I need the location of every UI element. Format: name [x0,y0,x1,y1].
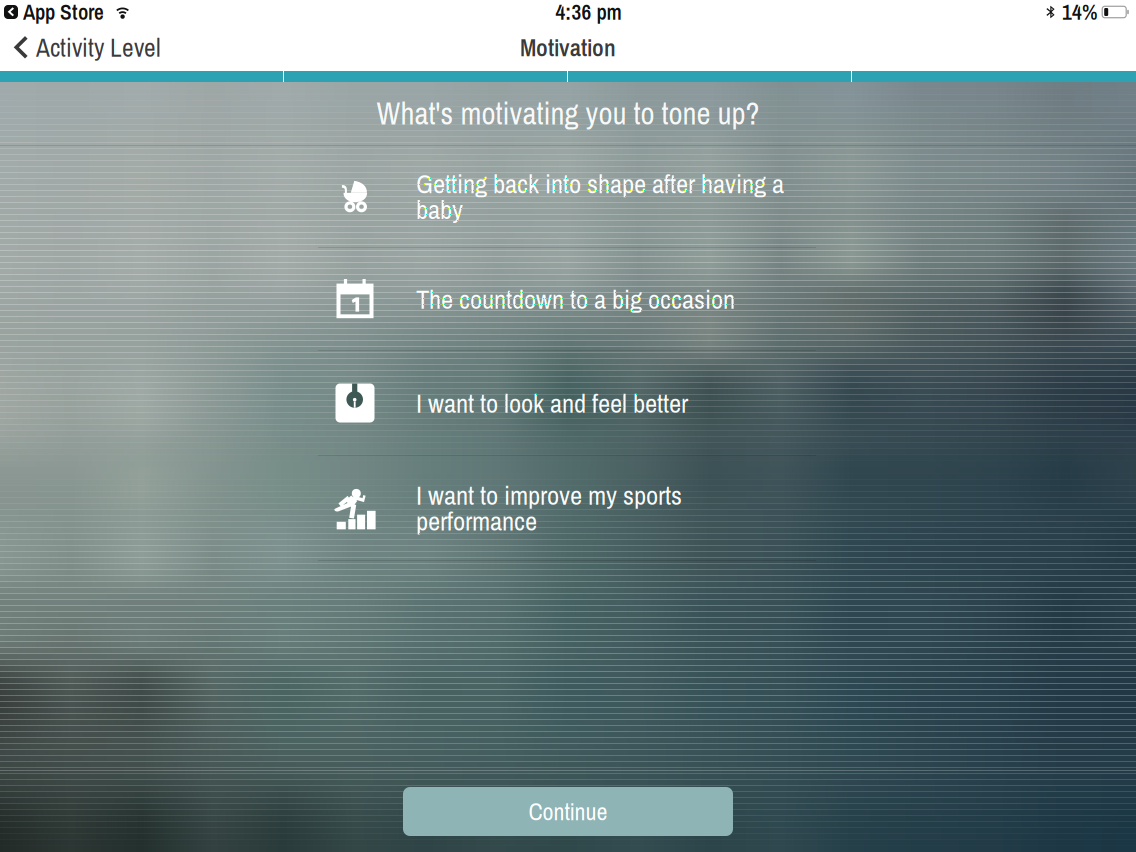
staticText: Getting back into shape after having a b… [416,166,784,227]
button[interactable]: I want to improve my sports performance [318,456,818,561]
staticText: I want to improve my sports performance [416,477,682,539]
staticText: Continue [528,795,607,828]
button[interactable]: The countdown to a big occasion [318,248,818,351]
staticText: Activity Level [36,30,161,64]
staticText: Motivation [520,31,616,64]
button[interactable]: Continue [403,787,733,836]
button[interactable]: I want to look and feel better [318,351,818,456]
staticText: App Store [23,0,104,26]
button[interactable]: Getting back into shape after having a b… [318,146,818,248]
button[interactable]: Activity Level [0,24,173,71]
staticText: 14% [1062,0,1098,26]
staticText: I want to look and feel better [416,385,688,421]
staticText: The countdown to a big occasion [416,281,735,317]
staticText: What's motivating you to tone up? [376,93,759,134]
staticText: 4:36 pm [555,0,621,26]
